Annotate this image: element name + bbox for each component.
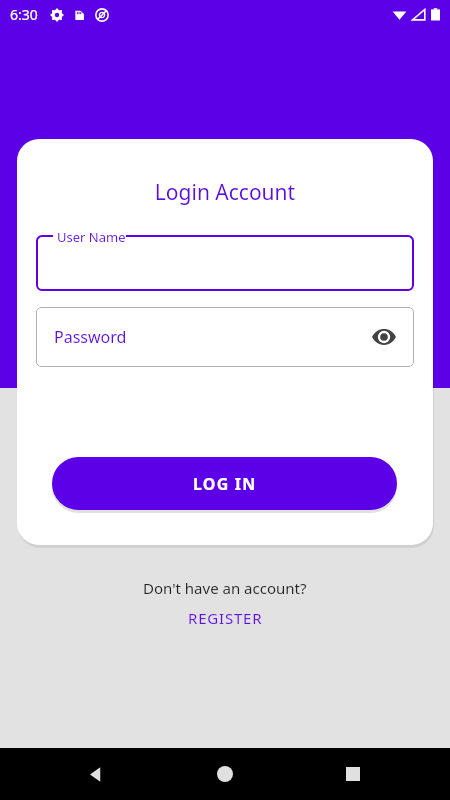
button[interactable]: Password bbox=[36, 307, 414, 367]
staticText: Password bbox=[54, 326, 127, 348]
button[interactable]: Show password bbox=[364, 317, 404, 357]
staticText: Don't have an account? bbox=[143, 578, 307, 598]
button[interactable]: Recent apps bbox=[331, 752, 375, 796]
staticText: LOG IN bbox=[193, 473, 257, 495]
staticText: Login Account bbox=[17, 178, 433, 207]
button[interactable]: Back bbox=[74, 752, 118, 796]
button[interactable]: REGISTER bbox=[180, 606, 271, 630]
staticText: REGISTER bbox=[188, 608, 263, 628]
staticText: 6:30 bbox=[10, 5, 38, 24]
staticText: User Name bbox=[57, 228, 126, 246]
button[interactable]: LOG IN bbox=[52, 457, 397, 510]
button[interactable]: User Name bbox=[36, 235, 414, 291]
button[interactable]: Home bbox=[203, 752, 247, 796]
